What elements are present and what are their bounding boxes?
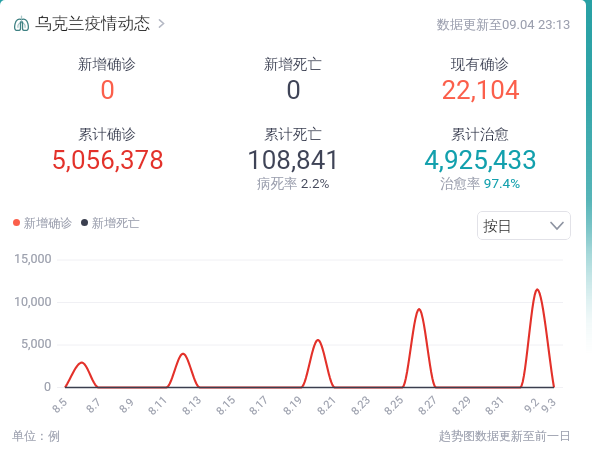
button[interactable]: 累计死亡 — [200, 125, 386, 191]
staticText: 累计确诊 — [78, 125, 136, 143]
staticText: 8.15 — [214, 393, 238, 418]
staticText: 乌克兰疫情动态 — [35, 13, 151, 34]
staticText: 病死率 2.2% — [257, 175, 330, 191]
staticText: 累计治愈 — [451, 125, 509, 143]
staticText: 5,000 — [21, 336, 52, 351]
button[interactable]: 乌克兰疫情动态 — [12, 13, 169, 34]
staticText: 4,925,433 — [424, 145, 537, 175]
staticText: 9.2 — [522, 395, 542, 416]
button[interactable]: 按日 — [477, 211, 571, 240]
button[interactable]: 现有确诊 — [387, 55, 573, 121]
staticText: 108,841 — [247, 145, 340, 175]
staticText: 累计死亡 — [264, 125, 322, 143]
staticText: 0 — [286, 75, 301, 105]
button[interactable]: 累计确诊 — [14, 125, 200, 191]
staticText: 22,104 — [441, 75, 520, 105]
staticText: 新增确诊 — [24, 215, 72, 230]
staticText: 0 — [44, 379, 52, 394]
staticText: 单位：例 — [12, 428, 60, 443]
button[interactable]: 新增确诊 — [14, 55, 200, 121]
staticText: 0 — [100, 75, 115, 105]
staticText: 15,000 — [14, 251, 52, 266]
staticText: 8.13 — [180, 393, 204, 418]
staticText: 8.7 — [84, 395, 104, 416]
staticText: 8.9 — [117, 395, 137, 416]
button[interactable]: 新增确诊 — [10, 209, 143, 235]
staticText: 8.31 — [483, 393, 507, 418]
staticText: 8.29 — [450, 393, 474, 418]
button[interactable]: 新增死亡 — [200, 55, 386, 121]
staticText: 10,000 — [14, 294, 52, 309]
staticText: 9.3 — [539, 395, 559, 416]
staticText: 8.23 — [349, 393, 373, 418]
staticText: 新增确诊 — [78, 55, 136, 73]
staticText: 8.27 — [416, 393, 440, 418]
staticText: 趋势图数据更新至前一日 — [439, 428, 571, 443]
staticText: 8.11 — [146, 393, 170, 418]
staticText: 按日 — [483, 217, 512, 235]
staticText: 8.21 — [315, 393, 339, 418]
staticText: 8.17 — [247, 393, 271, 418]
staticText: 新增死亡 — [264, 55, 322, 73]
staticText: 数据更新至09.04 23:13 — [437, 16, 571, 32]
staticText: 8.25 — [382, 393, 406, 418]
button[interactable]: 累计治愈 — [387, 125, 573, 191]
staticText: 新增死亡 — [92, 215, 140, 230]
staticText: 治愈率 97.4% — [440, 175, 521, 191]
staticText: 8.5 — [50, 395, 70, 416]
staticText: 现有确诊 — [451, 55, 509, 73]
staticText: 8.19 — [281, 393, 305, 418]
staticText: 5,056,378 — [51, 145, 164, 175]
